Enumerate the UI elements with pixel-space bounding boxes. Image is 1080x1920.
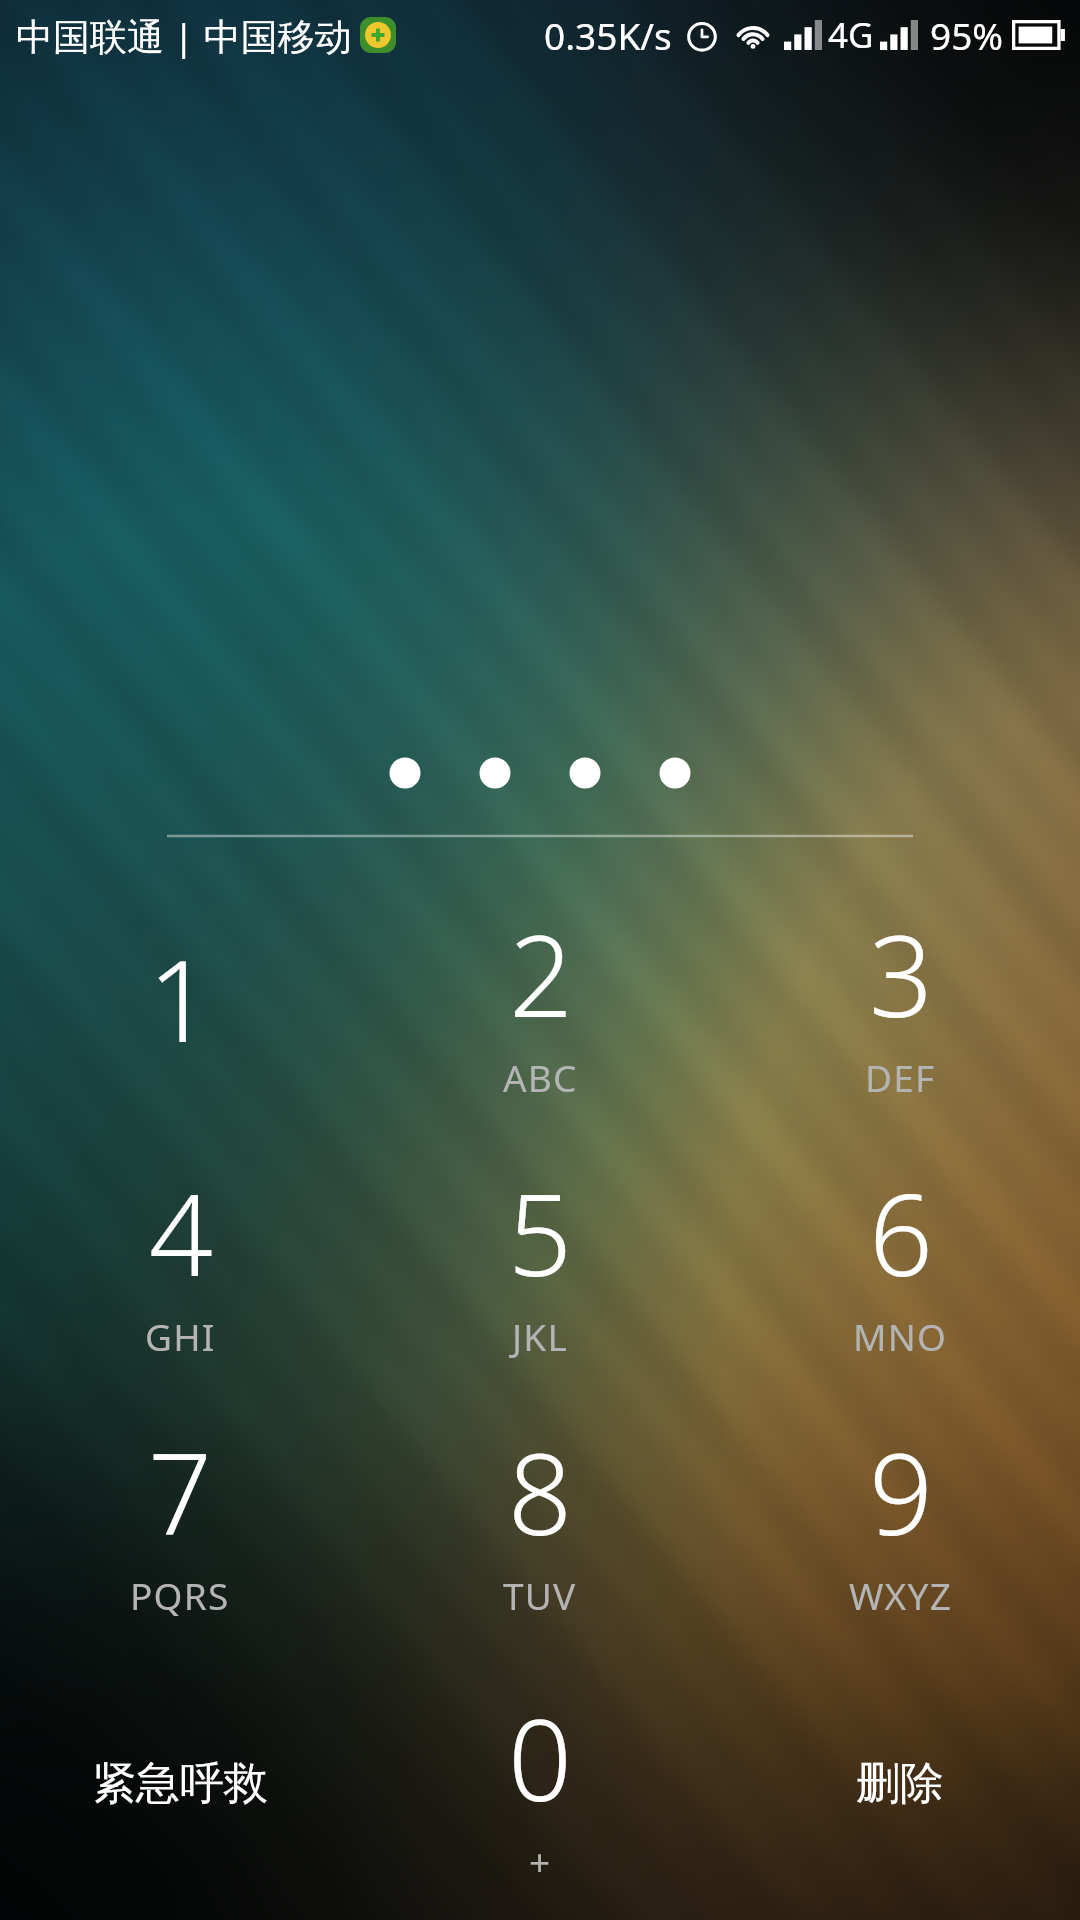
button[interactable]: 1 [0,870,360,1129]
staticText: 95% [930,10,1004,60]
staticText: 4G [828,11,874,59]
button[interactable]: 5 [360,1129,720,1388]
button[interactable]: 0 [360,1647,720,1920]
staticText: GHI [145,1311,216,1361]
staticText: 3 [869,897,933,1050]
button[interactable]: 8 [360,1388,720,1647]
staticText: + [529,1836,552,1886]
staticText: ABC [503,1052,578,1102]
staticText: 0.35K/s [544,10,672,60]
button[interactable]: 6 [720,1129,1080,1388]
staticText: 2 [509,897,573,1050]
staticText: 中国联通 | 中国移动 [16,10,352,61]
staticText: 6 [869,1156,933,1309]
button[interactable]: 7 [0,1388,360,1647]
staticText: 1 [148,922,212,1075]
staticText: MNO [853,1311,948,1361]
button[interactable]: 删除 [720,1647,1080,1920]
button[interactable]: 3 [720,870,1080,1129]
staticText: 5 [508,1156,572,1309]
button[interactable]: 4 [0,1129,360,1388]
staticText: 删除 [856,1756,944,1811]
staticText: 4 [149,1156,213,1309]
staticText: WXYZ [849,1570,952,1620]
button[interactable]: 2 [360,870,720,1129]
staticText: 7 [148,1415,212,1568]
staticText: TUV [503,1570,577,1620]
button[interactable]: 9 [720,1388,1080,1647]
staticText: 0 [508,1681,572,1834]
button[interactable]: 紧急呼救 [0,1647,360,1920]
staticText: 8 [508,1415,572,1568]
staticText: JKL [512,1311,568,1361]
staticText: 9 [869,1415,933,1568]
staticText: PQRS [130,1570,230,1620]
staticText: 紧急呼救 [92,1756,268,1811]
staticText: DEF [865,1052,936,1102]
